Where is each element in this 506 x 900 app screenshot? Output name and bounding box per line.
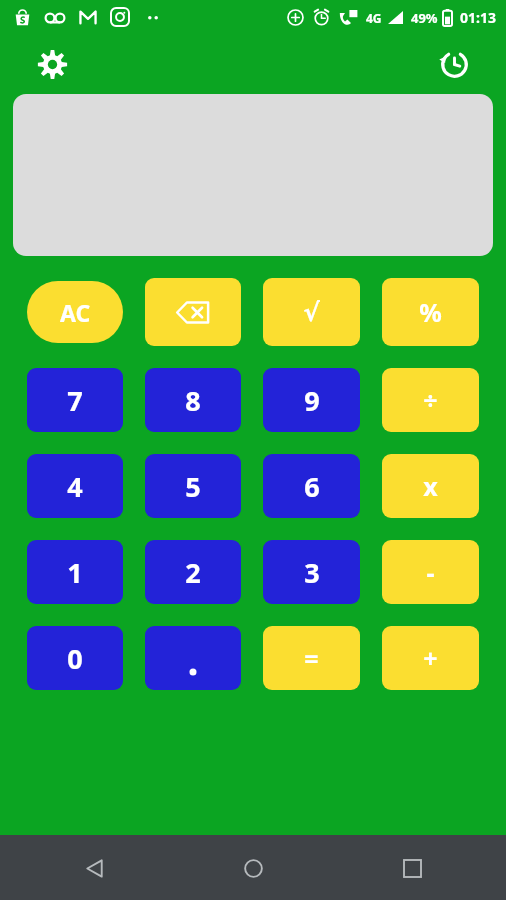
staticText: 49% (411, 9, 438, 27)
button[interactable]: 7 (27, 368, 123, 432)
button[interactable]: 0 (27, 626, 123, 690)
button[interactable]: 9 (263, 368, 360, 432)
staticText: % (419, 295, 442, 329)
button[interactable]: + (382, 626, 479, 690)
button[interactable]: % (382, 278, 479, 346)
staticText: √ (303, 298, 320, 327)
button[interactable] (13, 94, 493, 256)
staticText: AC (60, 297, 91, 328)
staticText: = (304, 641, 319, 675)
staticText: 5 (185, 468, 201, 505)
button[interactable]: 1 (27, 540, 123, 604)
button[interactable]: = (263, 626, 360, 690)
staticText: 9 (304, 382, 320, 419)
button[interactable]: √ (263, 278, 360, 346)
button[interactable]: Decimal point (145, 626, 241, 690)
button[interactable]: 3 (263, 540, 360, 604)
staticText: x (423, 469, 438, 503)
staticText: 01:13 (460, 8, 496, 27)
button[interactable]: Settings (30, 42, 74, 86)
staticText: 2 (185, 554, 201, 591)
button[interactable]: - (382, 540, 479, 604)
button[interactable]: 4 (27, 454, 123, 518)
staticText: 6 (304, 468, 320, 505)
staticText: 4G (366, 10, 382, 26)
button[interactable]: x (382, 454, 479, 518)
staticText: 3 (304, 554, 320, 591)
staticText: 8 (185, 382, 201, 419)
button[interactable]: History (432, 42, 476, 86)
button[interactable]: 6 (263, 454, 360, 518)
staticText: 1 (67, 554, 83, 591)
button[interactable]: 8 (145, 368, 241, 432)
staticText: 4 (67, 468, 83, 505)
staticText: ÷ (423, 383, 438, 417)
staticText: - (426, 555, 435, 589)
button[interactable]: Back (70, 844, 118, 892)
button[interactable]: 5 (145, 454, 241, 518)
button[interactable]: 2 (145, 540, 241, 604)
staticText: 0 (67, 640, 83, 677)
button[interactable]: Home (229, 844, 277, 892)
button[interactable]: ÷ (382, 368, 479, 432)
button[interactable]: AC (27, 281, 123, 343)
button[interactable]: Recents (388, 844, 436, 892)
staticText: 7 (67, 382, 83, 419)
button[interactable]: Backspace (145, 278, 241, 346)
staticText: + (423, 641, 438, 675)
